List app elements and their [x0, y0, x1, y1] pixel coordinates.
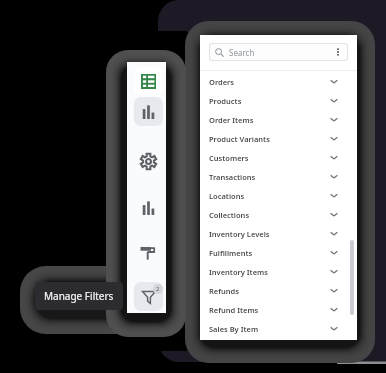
button[interactable]: Analytics [134, 193, 163, 222]
staticText: Product Variants [209, 134, 270, 144]
staticText: Inventory Levels [209, 229, 270, 239]
staticText: Sales By Item [209, 324, 259, 334]
button[interactable]: Order Items [200, 110, 357, 129]
button[interactable]: Locations [200, 186, 357, 205]
staticText: Transactions [209, 172, 256, 182]
staticText: Refund Items [209, 305, 259, 315]
button[interactable]: Refund Items [200, 300, 357, 319]
staticText: Refunds [209, 286, 239, 296]
button[interactable]: Sales By Item [200, 319, 357, 338]
staticText: 2 [156, 285, 160, 293]
staticText: Orders [209, 77, 235, 87]
staticText: Products [209, 96, 242, 106]
button[interactable]: Orders [200, 72, 357, 91]
button[interactable]: Search [210, 44, 347, 60]
staticText: Manage Filters [44, 289, 114, 303]
button[interactable]: Spreadsheet [134, 67, 163, 96]
staticText: Search [229, 47, 255, 58]
button[interactable]: Products [200, 91, 357, 110]
button[interactable]: More options [331, 45, 345, 59]
button[interactable]: Settings [134, 147, 163, 176]
button[interactable]: Inventory Levels [200, 224, 357, 243]
button[interactable]: Fulfillments [200, 243, 357, 262]
staticText: Inventory Items [209, 267, 268, 277]
button[interactable]: Collections [200, 205, 357, 224]
staticText: Collections [209, 210, 250, 220]
staticText: Fulfillments [209, 248, 253, 258]
button[interactable]: Product Variants [200, 129, 357, 148]
button[interactable]: Refunds [200, 281, 357, 300]
button[interactable]: Manage Filters [134, 282, 163, 311]
staticText: Order Items [209, 115, 254, 125]
staticText: Locations [209, 191, 245, 201]
button[interactable]: Manage Filters [35, 282, 123, 310]
button[interactable]: Transactions [200, 167, 357, 186]
button[interactable]: Customers [200, 148, 357, 167]
button[interactable]: Format [134, 238, 163, 267]
button[interactable]: Charts [134, 97, 163, 126]
button[interactable]: Inventory Items [200, 262, 357, 281]
staticText: Customers [209, 153, 249, 163]
